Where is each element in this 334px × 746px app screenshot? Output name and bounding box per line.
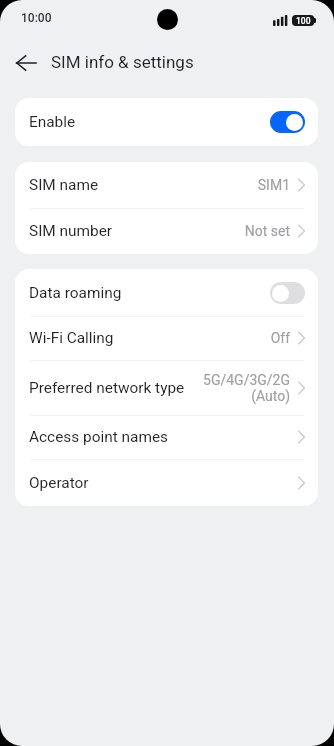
button[interactable]: Access point names <box>15 415 318 459</box>
button[interactable]: Enable <box>15 98 318 146</box>
button[interactable]: Wi-Fi Calling <box>15 316 318 360</box>
staticText: Access point names <box>29 428 169 446</box>
button[interactable]: Enable toggle <box>270 111 305 133</box>
staticText: Off <box>270 330 290 346</box>
staticText: SIM name <box>29 176 99 194</box>
staticText: 10:00 <box>21 11 52 25</box>
button[interactable]: Operator <box>15 459 318 506</box>
staticText: Operator <box>29 474 89 492</box>
staticText: Not set <box>244 223 290 239</box>
staticText: Preferred network type <box>29 379 185 397</box>
button[interactable]: Data roaming toggle <box>270 282 305 304</box>
staticText: 5G/4G/3G/2G (Auto) <box>203 372 290 404</box>
button[interactable]: Preferred network type <box>15 360 318 415</box>
staticText: Data roaming <box>29 284 122 302</box>
button[interactable]: Back <box>6 42 46 82</box>
staticText: 100 <box>296 16 311 26</box>
button[interactable]: SIM name <box>15 162 318 208</box>
staticText: SIM info & settings <box>51 52 194 72</box>
button[interactable]: Data roaming <box>15 269 318 316</box>
button[interactable]: SIM number <box>15 208 318 254</box>
staticText: Enable <box>29 113 76 131</box>
staticText: SIM1 <box>257 177 290 193</box>
staticText: SIM number <box>29 222 113 240</box>
staticText: Wi-Fi Calling <box>29 329 114 347</box>
